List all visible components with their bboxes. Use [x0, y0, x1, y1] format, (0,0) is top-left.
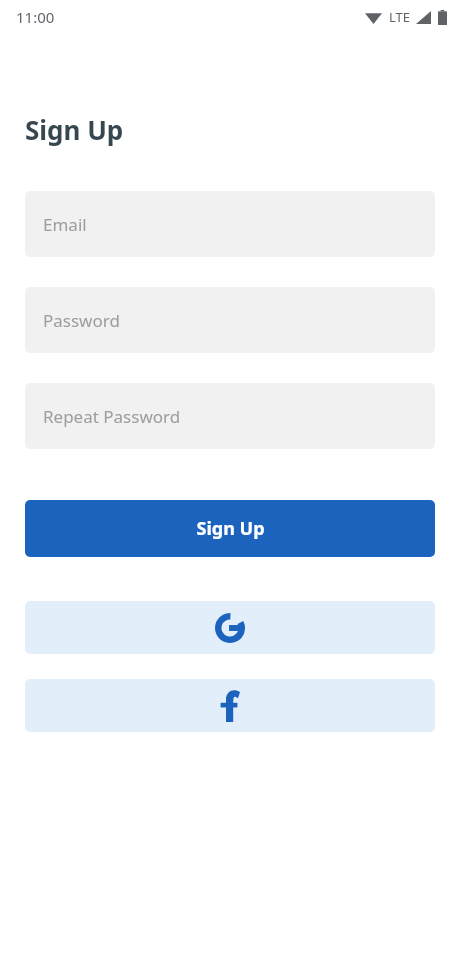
staticText: Repeat Password — [43, 405, 181, 428]
button[interactable]: Sign up with Google — [25, 601, 435, 654]
staticText: 11:00 — [16, 7, 55, 27]
staticText: LTE — [389, 8, 411, 26]
staticText: Sign Up — [25, 112, 124, 147]
button[interactable]: Email — [25, 191, 435, 257]
staticText: Password — [43, 309, 120, 332]
button[interactable]: Repeat Password — [25, 383, 435, 449]
staticText: Email — [43, 213, 87, 236]
staticText: Sign Up — [196, 516, 265, 541]
button[interactable]: Password — [25, 287, 435, 353]
button[interactable]: Sign Up — [25, 500, 435, 557]
button[interactable]: Sign up with Facebook — [25, 679, 435, 732]
